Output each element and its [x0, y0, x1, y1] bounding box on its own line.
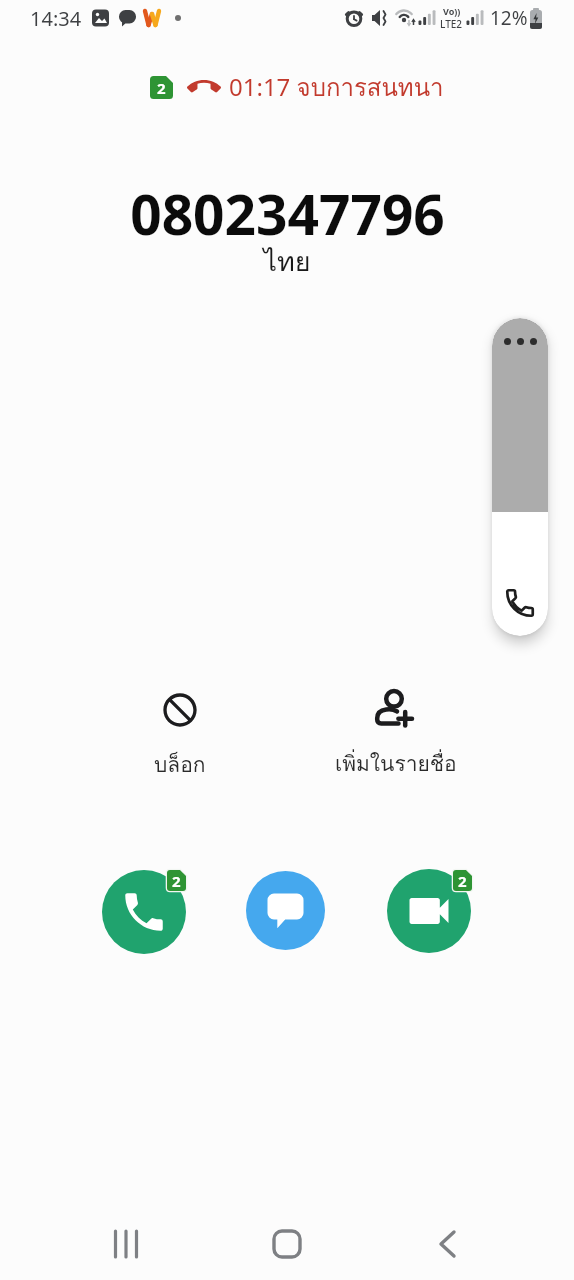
staticText: Vo)) — [443, 5, 461, 17]
button[interactable]: เพิ่มในรายชื่อ — [316, 688, 476, 788]
button[interactable] — [257, 1214, 317, 1274]
staticText: 2 — [172, 871, 181, 891]
staticText: ไทย — [263, 240, 311, 283]
staticText: เพิ่มในรายชื่อ — [335, 747, 457, 780]
button[interactable] — [417, 1214, 477, 1274]
button[interactable] — [96, 1214, 156, 1274]
staticText: 2 — [458, 871, 467, 891]
staticText: LTE2 — [440, 17, 463, 31]
staticText: 14:34 — [30, 5, 82, 32]
button[interactable] — [387, 869, 471, 953]
button[interactable] — [246, 871, 325, 950]
staticText: 2 — [157, 78, 166, 98]
staticText: 12% — [490, 5, 528, 31]
staticText: 0802347796 — [130, 176, 445, 251]
staticText: บล็อก — [154, 748, 206, 781]
button[interactable] — [102, 870, 186, 954]
staticText: 01:17 จบการสนทนา — [229, 68, 444, 106]
button[interactable]: บล็อก — [125, 690, 235, 785]
button[interactable] — [492, 318, 548, 636]
